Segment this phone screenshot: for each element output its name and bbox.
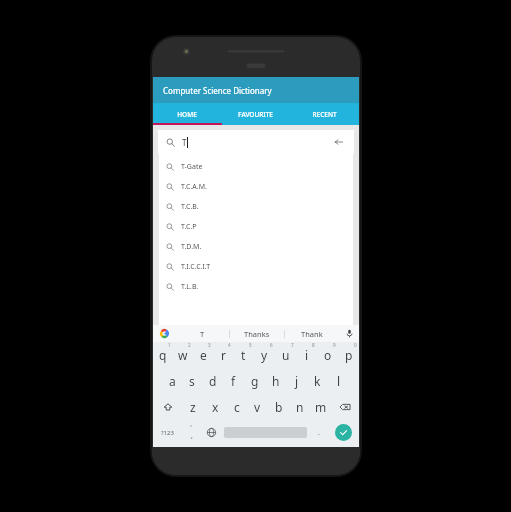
button[interactable]: n bbox=[289, 394, 310, 420]
staticText: T.C.B. bbox=[181, 202, 199, 212]
button[interactable]: g bbox=[244, 368, 265, 394]
button[interactable]: T.C.P bbox=[159, 217, 353, 237]
button[interactable]: o bbox=[317, 342, 338, 368]
button[interactable]: b bbox=[268, 394, 289, 420]
staticText: 3 bbox=[208, 342, 211, 348]
button[interactable]: q bbox=[153, 342, 173, 368]
button[interactable]: l bbox=[328, 368, 349, 394]
staticText: d bbox=[209, 373, 217, 389]
staticText: c bbox=[234, 399, 240, 415]
button[interactable]: y bbox=[254, 342, 275, 368]
button[interactable]: v bbox=[247, 394, 268, 420]
staticText: q bbox=[159, 347, 167, 363]
button[interactable]: Enter bbox=[335, 424, 352, 441]
button[interactable]: T.D.M. bbox=[159, 237, 353, 257]
staticText: , bbox=[191, 431, 193, 441]
button[interactable]: i bbox=[296, 342, 317, 368]
staticText: m bbox=[315, 399, 327, 415]
button[interactable]: T bbox=[158, 130, 354, 154]
staticText: T.D.M. bbox=[181, 242, 202, 252]
staticText: T-Gate bbox=[181, 162, 203, 172]
staticText: o bbox=[324, 347, 332, 363]
button[interactable]: r bbox=[213, 342, 233, 368]
button[interactable]: . bbox=[309, 420, 328, 445]
staticText: t bbox=[241, 347, 246, 363]
staticText: 0 bbox=[354, 342, 357, 348]
staticText: i bbox=[305, 347, 309, 363]
staticText: l bbox=[337, 373, 341, 389]
staticText: b bbox=[275, 399, 283, 415]
staticText: . bbox=[318, 428, 320, 438]
staticText: e bbox=[200, 347, 207, 363]
staticText: y bbox=[261, 347, 268, 363]
staticText: T.I.C.C.I.T bbox=[181, 262, 211, 272]
button[interactable]: k bbox=[307, 368, 328, 394]
button[interactable]: x bbox=[204, 394, 226, 420]
staticText: T bbox=[182, 137, 187, 148]
button[interactable]: c bbox=[226, 394, 247, 420]
staticText: 1 bbox=[168, 342, 171, 348]
staticText: n bbox=[296, 399, 304, 415]
button[interactable]: HOME bbox=[153, 103, 221, 125]
staticText: x bbox=[212, 399, 219, 415]
staticText: a bbox=[169, 373, 176, 389]
staticText: ?123 bbox=[161, 429, 174, 437]
button[interactable]: RECENT bbox=[290, 103, 359, 125]
staticText: 6 bbox=[270, 342, 273, 348]
staticText: T.C.A.M. bbox=[181, 182, 207, 192]
button[interactable]: d bbox=[202, 368, 223, 394]
staticText: 2 bbox=[188, 342, 191, 348]
button[interactable]: s bbox=[182, 368, 202, 394]
button[interactable]: f bbox=[223, 368, 244, 394]
staticText: T.C.P bbox=[181, 222, 197, 232]
button[interactable]: w bbox=[173, 342, 193, 368]
button[interactable]: Thank bbox=[285, 325, 339, 342]
staticText: w bbox=[178, 347, 188, 363]
button[interactable]: T-Gate bbox=[159, 157, 353, 177]
button[interactable]: Voice input bbox=[339, 325, 359, 342]
staticText: z bbox=[190, 399, 196, 415]
button[interactable]: a bbox=[162, 368, 182, 394]
staticText: r bbox=[221, 347, 226, 363]
staticText: Thank bbox=[301, 329, 323, 339]
staticText: u bbox=[282, 347, 290, 363]
staticText: T bbox=[200, 329, 205, 339]
staticText: 4 bbox=[228, 342, 231, 348]
button[interactable]: ° bbox=[182, 420, 201, 445]
staticText: T.L.B. bbox=[181, 282, 199, 292]
button[interactable]: m bbox=[310, 394, 331, 420]
staticText: RECENT bbox=[312, 110, 337, 119]
button[interactable]: j bbox=[286, 368, 307, 394]
staticText: g bbox=[251, 373, 259, 389]
staticText: FAVOURITE bbox=[238, 110, 273, 119]
staticText: f bbox=[231, 373, 236, 389]
button[interactable]: T.I.C.C.I.T bbox=[159, 257, 353, 277]
button[interactable]: Change language bbox=[201, 420, 222, 445]
button[interactable]: Shift bbox=[153, 394, 182, 420]
button[interactable]: Google bbox=[153, 325, 175, 342]
staticText: k bbox=[314, 373, 321, 389]
button[interactable]: e bbox=[193, 342, 213, 368]
button[interactable]: Back bbox=[332, 135, 346, 149]
staticText: 7 bbox=[291, 342, 294, 348]
button[interactable]: z bbox=[182, 394, 204, 420]
staticText: ° bbox=[190, 424, 193, 431]
staticText: 5 bbox=[249, 342, 252, 348]
button[interactable]: Backspace bbox=[331, 394, 359, 420]
button[interactable]: T bbox=[175, 325, 229, 342]
button[interactable]: ?123 bbox=[153, 420, 182, 445]
button[interactable]: FAVOURITE bbox=[221, 103, 290, 125]
button[interactable]: p bbox=[338, 342, 359, 368]
button[interactable]: T.C.B. bbox=[159, 197, 353, 217]
button[interactable]: u bbox=[275, 342, 296, 368]
button[interactable]: T.C.A.M. bbox=[159, 177, 353, 197]
button[interactable]: t bbox=[233, 342, 254, 368]
button[interactable]: Thanks bbox=[230, 325, 284, 342]
staticText: Thanks bbox=[244, 329, 270, 339]
staticText: 8 bbox=[312, 342, 315, 348]
staticText: Computer Science Dictionary bbox=[163, 85, 272, 96]
button[interactable]: T.L.B. bbox=[159, 277, 353, 297]
button[interactable]: h bbox=[265, 368, 286, 394]
staticText: p bbox=[345, 347, 353, 363]
